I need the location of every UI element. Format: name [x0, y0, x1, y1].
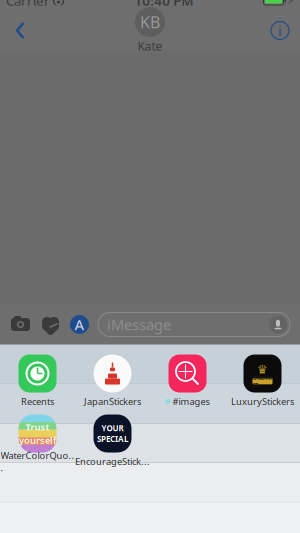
button[interactable]: iMessage Apps — [70, 315, 89, 334]
staticText: WaterColorQuo... — [0, 449, 74, 474]
button[interactable]: Camera — [10, 315, 31, 333]
staticText: SPECIAL — [97, 433, 128, 444]
staticText: i — [278, 21, 282, 40]
staticText: Trust — [25, 421, 49, 433]
button[interactable]: ♛ — [225, 352, 300, 408]
staticText: Recents — [21, 395, 54, 408]
button[interactable]: #images — [150, 352, 225, 408]
staticText: yourself — [19, 434, 56, 446]
button[interactable]: Digital Touch — [40, 314, 61, 334]
staticText: iMessage — [107, 315, 171, 334]
staticText: YOUR — [101, 423, 123, 433]
staticText: JapanStickers — [84, 395, 141, 408]
staticText: A — [74, 315, 84, 334]
staticText: ♛ — [257, 363, 268, 376]
button[interactable]: Trust — [0, 412, 75, 468]
button[interactable]: Back — [0, 9, 40, 51]
staticText: KB — [140, 11, 160, 33]
staticText: Kate — [137, 38, 162, 54]
staticText: ⚡︎ — [287, 0, 294, 6]
staticText: DREAM IT — [253, 374, 272, 388]
button[interactable]: JapanStickers — [75, 352, 150, 408]
button[interactable]: Recents — [0, 352, 75, 408]
button[interactable]: YOUR — [75, 412, 150, 468]
staticText: 10:40 PM — [134, 0, 193, 9]
staticText: EncourageStick... — [75, 455, 150, 468]
button[interactable]: Dictate — [269, 315, 287, 333]
staticText: Carrier — [6, 0, 50, 9]
staticText: LuxuryStickers — [231, 395, 294, 408]
button[interactable]: Details — [260, 9, 300, 51]
staticText: #images — [172, 395, 209, 408]
